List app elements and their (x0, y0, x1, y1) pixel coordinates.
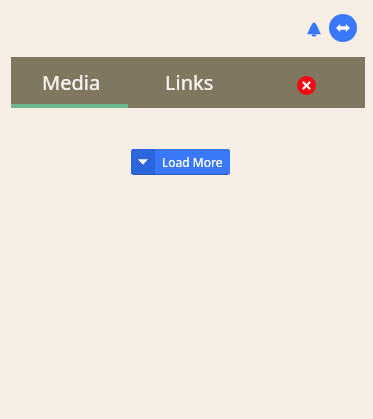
button[interactable]: Resize (329, 14, 357, 42)
button[interactable]: Links (132, 57, 246, 108)
staticText: Load More (162, 154, 223, 170)
staticText: Media (42, 69, 101, 96)
button[interactable]: More options (131, 149, 230, 175)
button[interactable]: More options (131, 149, 155, 174)
button[interactable]: Close (297, 76, 316, 95)
button[interactable]: Media (11, 57, 132, 108)
button[interactable]: Load More (155, 149, 230, 174)
button[interactable]: Notifications (307, 22, 321, 36)
staticText: Links (165, 69, 214, 96)
